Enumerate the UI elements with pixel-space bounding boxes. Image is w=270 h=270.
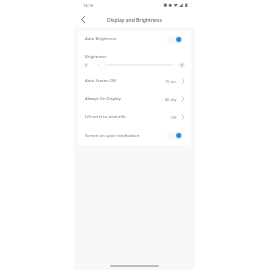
staticText: Off bbox=[171, 115, 177, 120]
button[interactable]: Auto Brightness bbox=[78, 31, 191, 47]
button[interactable]: Lift wrist to view info bbox=[78, 108, 191, 126]
staticText: 15 sec. bbox=[165, 79, 177, 84]
staticText: Display and Brightness bbox=[107, 17, 162, 24]
staticText: All day bbox=[165, 97, 177, 102]
staticText: Auto Brightness bbox=[85, 36, 117, 42]
staticText: 14:16 bbox=[83, 3, 94, 8]
staticText: Auto Screen Off bbox=[85, 78, 116, 84]
button[interactable]: Screen on upon notification bbox=[78, 126, 191, 145]
staticText: Brightness bbox=[85, 54, 107, 60]
staticText: Always On Display bbox=[85, 96, 121, 102]
button[interactable]: Always On Display bbox=[78, 90, 191, 108]
button[interactable]: Back bbox=[77, 13, 89, 25]
button[interactable]: Auto Screen Off bbox=[78, 72, 191, 90]
staticText: Screen on upon notification bbox=[85, 133, 140, 139]
staticText: Lift wrist to view info bbox=[85, 114, 126, 120]
